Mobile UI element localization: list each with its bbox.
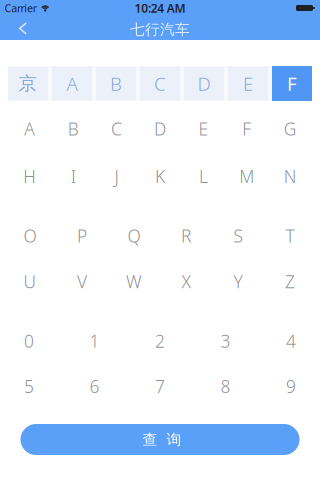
button[interactable]: O xyxy=(4,226,56,246)
staticText: S xyxy=(233,224,242,247)
staticText: E xyxy=(243,71,253,96)
staticText: J xyxy=(115,165,119,188)
button[interactable]: B xyxy=(96,66,136,100)
button[interactable]: V xyxy=(56,271,108,291)
staticText: Carrier xyxy=(4,1,37,15)
staticText: F xyxy=(242,117,251,140)
staticText: K xyxy=(155,165,165,188)
button[interactable]: Z xyxy=(264,271,316,291)
staticText: Z xyxy=(285,270,295,293)
button[interactable]: 1 xyxy=(62,331,127,351)
staticText: M xyxy=(239,165,254,188)
button[interactable]: Y xyxy=(212,271,264,291)
staticText: D xyxy=(197,71,210,96)
button[interactable]: 8 xyxy=(193,376,258,396)
button[interactable]: 4 xyxy=(258,331,320,351)
button[interactable]: 9 xyxy=(258,376,320,396)
button[interactable]: 查 xyxy=(20,424,299,455)
staticText: 京 xyxy=(18,72,37,95)
button[interactable]: I xyxy=(51,166,95,186)
staticText: V xyxy=(77,270,87,293)
button[interactable]: D xyxy=(184,66,224,100)
staticText: 2 xyxy=(155,329,165,352)
staticText: 七行汽车 xyxy=(130,20,190,38)
button[interactable]: Back xyxy=(8,16,38,40)
staticText: D xyxy=(154,117,166,140)
button[interactable]: E xyxy=(228,66,268,100)
button[interactable]: H xyxy=(8,166,51,186)
button[interactable]: C xyxy=(140,66,180,100)
staticText: 3 xyxy=(220,329,230,352)
button[interactable]: 2 xyxy=(127,331,193,351)
button[interactable]: A xyxy=(8,119,51,139)
staticText: U xyxy=(23,270,36,293)
button[interactable]: F xyxy=(272,66,312,101)
staticText: C xyxy=(154,71,166,96)
staticText: A xyxy=(66,71,77,96)
button[interactable]: R xyxy=(160,226,212,246)
staticText: 查 xyxy=(142,430,157,448)
staticText: 5 xyxy=(24,375,34,398)
button[interactable]: 5 xyxy=(0,376,62,396)
button[interactable]: F xyxy=(225,119,268,139)
button[interactable]: U xyxy=(4,271,56,291)
staticText: O xyxy=(23,224,36,247)
staticText: 0 xyxy=(24,329,34,352)
staticText: 7 xyxy=(155,375,165,398)
button[interactable]: P xyxy=(56,226,108,246)
button[interactable]: M xyxy=(225,166,268,186)
staticText: 6 xyxy=(89,375,99,398)
staticText: C xyxy=(111,117,122,140)
button[interactable]: 6 xyxy=(62,376,127,396)
staticText: B xyxy=(110,71,122,96)
button[interactable]: D xyxy=(138,119,182,139)
staticText: T xyxy=(285,224,294,247)
staticText: 4 xyxy=(286,329,296,352)
button[interactable]: 7 xyxy=(127,376,193,396)
button[interactable]: 0 xyxy=(0,331,62,351)
staticText: Q xyxy=(127,224,140,247)
staticText: R xyxy=(181,224,191,247)
staticText: G xyxy=(284,117,297,140)
staticText: E xyxy=(198,117,208,140)
staticText: F xyxy=(287,71,297,96)
button[interactable]: S xyxy=(212,226,264,246)
button[interactable]: J xyxy=(95,166,138,186)
button[interactable]: B xyxy=(51,119,95,139)
staticText: I xyxy=(71,165,76,188)
button[interactable]: L xyxy=(182,166,225,186)
staticText: 询 xyxy=(166,430,181,448)
button[interactable]: W xyxy=(108,271,160,291)
staticText: A xyxy=(24,117,35,140)
button[interactable]: X xyxy=(160,271,212,291)
button[interactable]: T xyxy=(264,226,316,246)
button[interactable]: C xyxy=(95,119,138,139)
staticText: N xyxy=(284,165,297,188)
staticText: 10:24 AM xyxy=(134,0,185,16)
staticText: Y xyxy=(233,270,242,293)
staticText: L xyxy=(199,165,208,188)
staticText: B xyxy=(68,117,79,140)
button[interactable]: N xyxy=(269,166,312,186)
staticText: X xyxy=(181,270,190,293)
button[interactable]: G xyxy=(269,119,312,139)
staticText: 8 xyxy=(220,375,230,398)
button[interactable]: A xyxy=(52,66,92,100)
button[interactable]: Q xyxy=(108,226,160,246)
staticText: H xyxy=(23,165,36,188)
button[interactable]: 京 xyxy=(8,66,48,100)
staticText: P xyxy=(77,224,87,247)
staticText: 1 xyxy=(89,329,99,352)
button[interactable]: E xyxy=(182,119,225,139)
staticText: 9 xyxy=(286,375,296,398)
button[interactable]: K xyxy=(138,166,182,186)
button[interactable]: 3 xyxy=(193,331,258,351)
staticText: W xyxy=(126,270,142,293)
